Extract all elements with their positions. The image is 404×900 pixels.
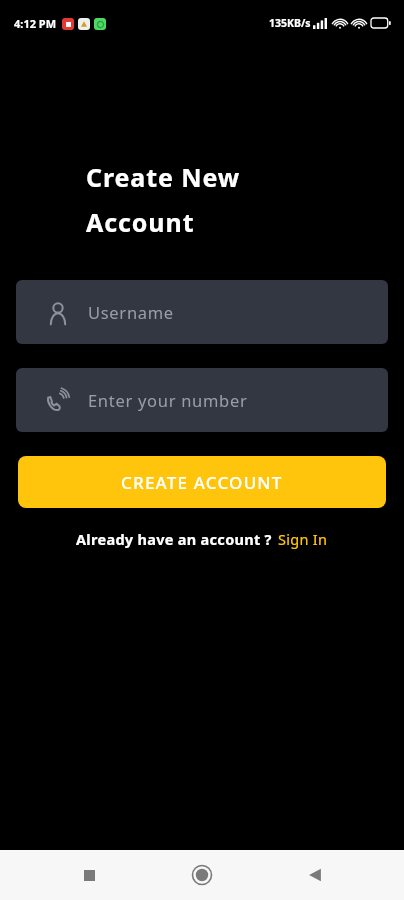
staticText: Create New (86, 160, 241, 194)
staticText: Username (88, 301, 174, 323)
staticText: Enter your number (88, 389, 248, 411)
staticText: 4:12 PM (14, 16, 57, 31)
staticText: Already have an account ? (76, 529, 272, 549)
button[interactable]: CREATE ACCOUNT (18, 456, 386, 508)
button[interactable]: Enter your number (16, 368, 388, 432)
staticText: Sign In (278, 529, 328, 549)
button[interactable]: Sign In (278, 529, 328, 549)
staticText: 135KB/s (269, 16, 311, 30)
staticText: CREATE ACCOUNT (121, 471, 283, 494)
button[interactable]: Username (16, 280, 388, 344)
staticText: Account (86, 205, 195, 239)
button[interactable]: Back (291, 851, 339, 899)
button[interactable]: Home (178, 851, 226, 899)
button[interactable]: Recent apps (65, 851, 113, 899)
